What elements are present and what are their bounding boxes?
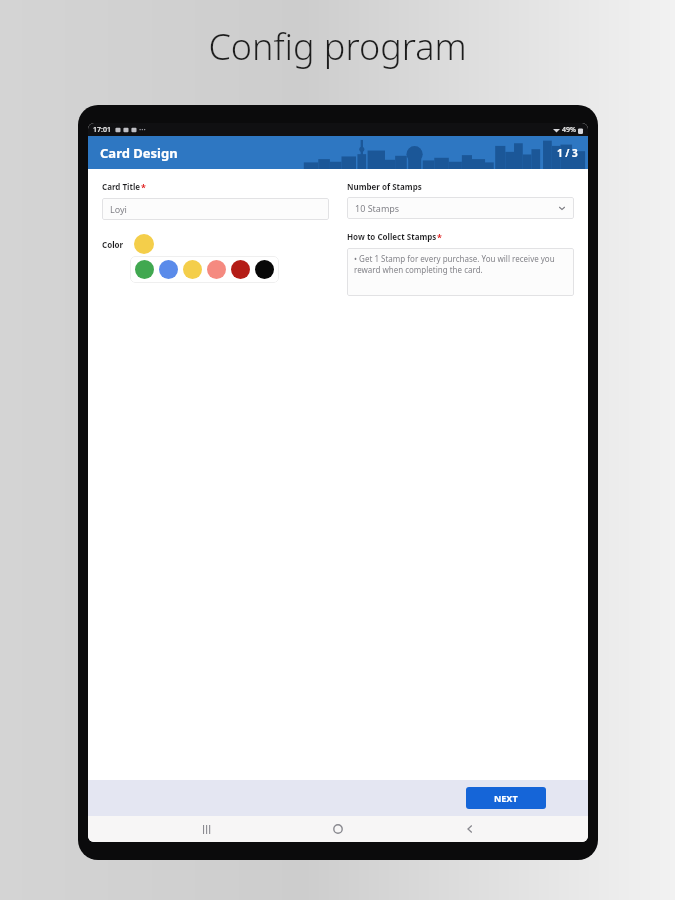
button[interactable]: Dark red [231, 260, 250, 279]
button[interactable]: Selected card colour [134, 234, 154, 254]
staticText: 49% [562, 125, 576, 135]
staticText: Config program [208, 22, 467, 71]
staticText: * [141, 181, 146, 193]
staticText: Number of Stamps [347, 181, 422, 192]
button[interactable]: Black [255, 260, 274, 279]
staticText: Card Design [100, 144, 178, 162]
button[interactable]: Back [457, 816, 483, 842]
button[interactable]: 10 Stamps [347, 197, 574, 219]
staticText: * [437, 231, 442, 243]
button[interactable]: NEXT [466, 787, 546, 809]
button[interactable]: Salmon [207, 260, 226, 279]
button[interactable]: • Get 1 Stamp for every purchase. You wi… [347, 248, 574, 296]
button[interactable]: Yellow [183, 260, 202, 279]
staticText: Color [102, 239, 124, 250]
button[interactable]: Green [135, 260, 154, 279]
staticText: 1 / 3 [557, 146, 578, 160]
button[interactable]: Loyi [102, 198, 329, 220]
staticText: Loyi [110, 203, 127, 215]
staticText: 17:01 [93, 125, 111, 135]
staticText: • Get 1 Stamp for every purchase. You wi… [354, 253, 567, 276]
button[interactable]: Blue [159, 260, 178, 279]
staticText: NEXT [494, 792, 518, 804]
staticText: ••• [139, 126, 146, 134]
staticText: 10 Stamps [355, 202, 400, 214]
staticText: How to Collect Stamps [347, 231, 437, 242]
button[interactable]: Recent apps [194, 816, 220, 842]
button[interactable]: Home [325, 816, 351, 842]
staticText: Card Title [102, 181, 141, 192]
